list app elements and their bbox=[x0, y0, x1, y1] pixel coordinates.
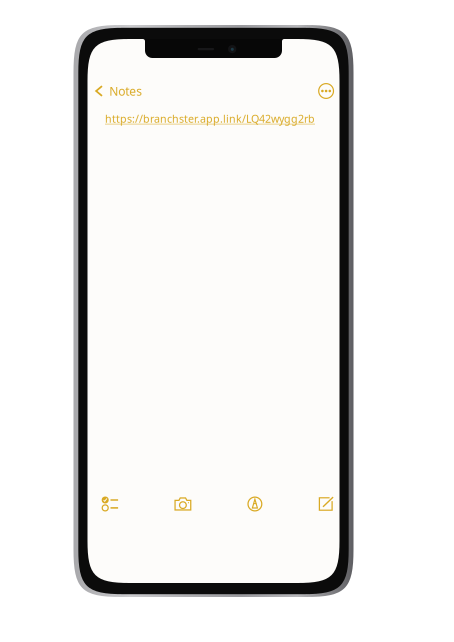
button[interactable]: New Note bbox=[306, 489, 346, 519]
button[interactable]: https://branchster.app.link/LQ42wygg2rb bbox=[105, 111, 315, 126]
button[interactable]: Markup bbox=[235, 489, 275, 519]
button[interactable]: Notes bbox=[87, 76, 152, 106]
staticText: Notes bbox=[109, 83, 142, 99]
button[interactable]: Checklist bbox=[90, 489, 130, 519]
button[interactable]: Camera bbox=[163, 489, 203, 519]
button[interactable]: More bbox=[309, 76, 339, 106]
staticText: https://branchster.app.link/LQ42wygg2rb bbox=[105, 111, 315, 126]
